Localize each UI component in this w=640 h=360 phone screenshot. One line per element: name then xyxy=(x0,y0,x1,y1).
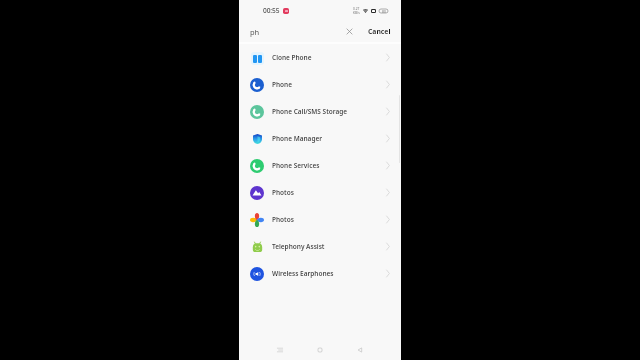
staticText: Phone Call/SMS Storage xyxy=(272,107,348,116)
staticText: Photos xyxy=(272,215,294,224)
staticText: KB/s xyxy=(353,11,360,15)
staticText: 80 xyxy=(382,9,386,13)
button[interactable]: Telephony Assist xyxy=(239,233,401,260)
staticText: Phone xyxy=(272,80,293,89)
button[interactable]: Phone Call/SMS Storage xyxy=(239,98,401,125)
staticText: Telephony Assist xyxy=(272,242,325,251)
button[interactable]: Photos xyxy=(239,179,401,206)
button[interactable]: Clone Phone xyxy=(239,44,401,71)
button[interactable]: Wireless Earphones xyxy=(239,260,401,287)
button[interactable]: Phone Services xyxy=(239,152,401,179)
staticText: 00:55 xyxy=(263,6,280,15)
staticText: Phone Services xyxy=(272,161,320,170)
staticText: Clone Phone xyxy=(272,53,312,62)
button[interactable]: Recent apps xyxy=(273,339,287,360)
staticText: Wireless Earphones xyxy=(272,269,334,278)
staticText: ph xyxy=(250,27,260,37)
button[interactable]: Phone xyxy=(239,71,401,98)
button[interactable]: Home xyxy=(313,339,327,360)
button[interactable]: Photos xyxy=(239,206,401,233)
button[interactable]: Cancel xyxy=(364,24,401,39)
button[interactable]: Phone Manager xyxy=(239,125,401,152)
staticText: Cancel xyxy=(368,27,391,36)
staticText: 0.27 xyxy=(353,7,360,11)
staticText: Photos xyxy=(272,188,294,197)
staticText: Phone Manager xyxy=(272,134,323,143)
button[interactable]: Back xyxy=(353,339,367,360)
button[interactable]: Clear search text xyxy=(342,24,357,39)
